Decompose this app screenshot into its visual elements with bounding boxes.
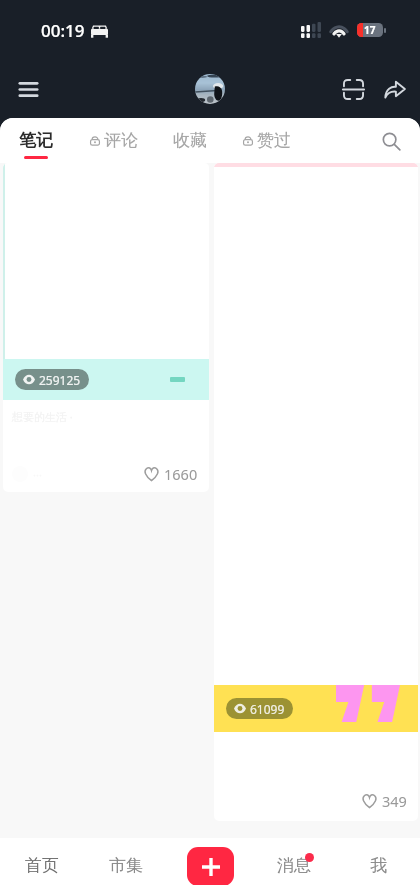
staticText: 349 <box>382 791 407 811</box>
button[interactable]: 我 <box>360 847 397 884</box>
button[interactable]: Scan QR code <box>332 68 374 110</box>
button[interactable]: Profile avatar <box>195 74 225 104</box>
button[interactable]: 评论 <box>89 130 138 159</box>
button[interactable]: Menu <box>6 67 50 111</box>
staticText: 首页 <box>25 855 59 876</box>
button[interactable]: 赞过 <box>242 130 291 159</box>
staticText: 市集 <box>109 855 143 876</box>
staticText: 消息 <box>277 855 311 876</box>
staticText: 00:19 <box>41 19 85 42</box>
staticText: 想要的生活 · <box>12 409 73 424</box>
button[interactable]: 市集 <box>99 847 153 884</box>
staticText: 17 <box>364 23 376 37</box>
staticText: 1660 <box>164 464 198 484</box>
staticText: 评论 <box>104 130 138 151</box>
button[interactable]: 收藏 <box>173 130 207 159</box>
staticText: 收藏 <box>173 130 207 151</box>
button[interactable]: 消息 <box>267 847 321 884</box>
button[interactable]: 笔记 <box>19 130 53 159</box>
button[interactable]: Create new post <box>187 847 234 885</box>
button[interactable]: 首页 <box>15 847 69 884</box>
staticText: 我 <box>370 855 387 876</box>
button[interactable]: 61099 <box>214 163 418 821</box>
button[interactable]: Search <box>372 122 410 160</box>
button[interactable]: 259125 <box>3 163 209 492</box>
staticText: 259125 <box>39 372 81 388</box>
staticText: 赞过 <box>257 130 291 151</box>
staticText: 61099 <box>250 701 285 717</box>
button[interactable]: Share <box>374 68 416 110</box>
staticText: 笔记 <box>19 130 53 151</box>
